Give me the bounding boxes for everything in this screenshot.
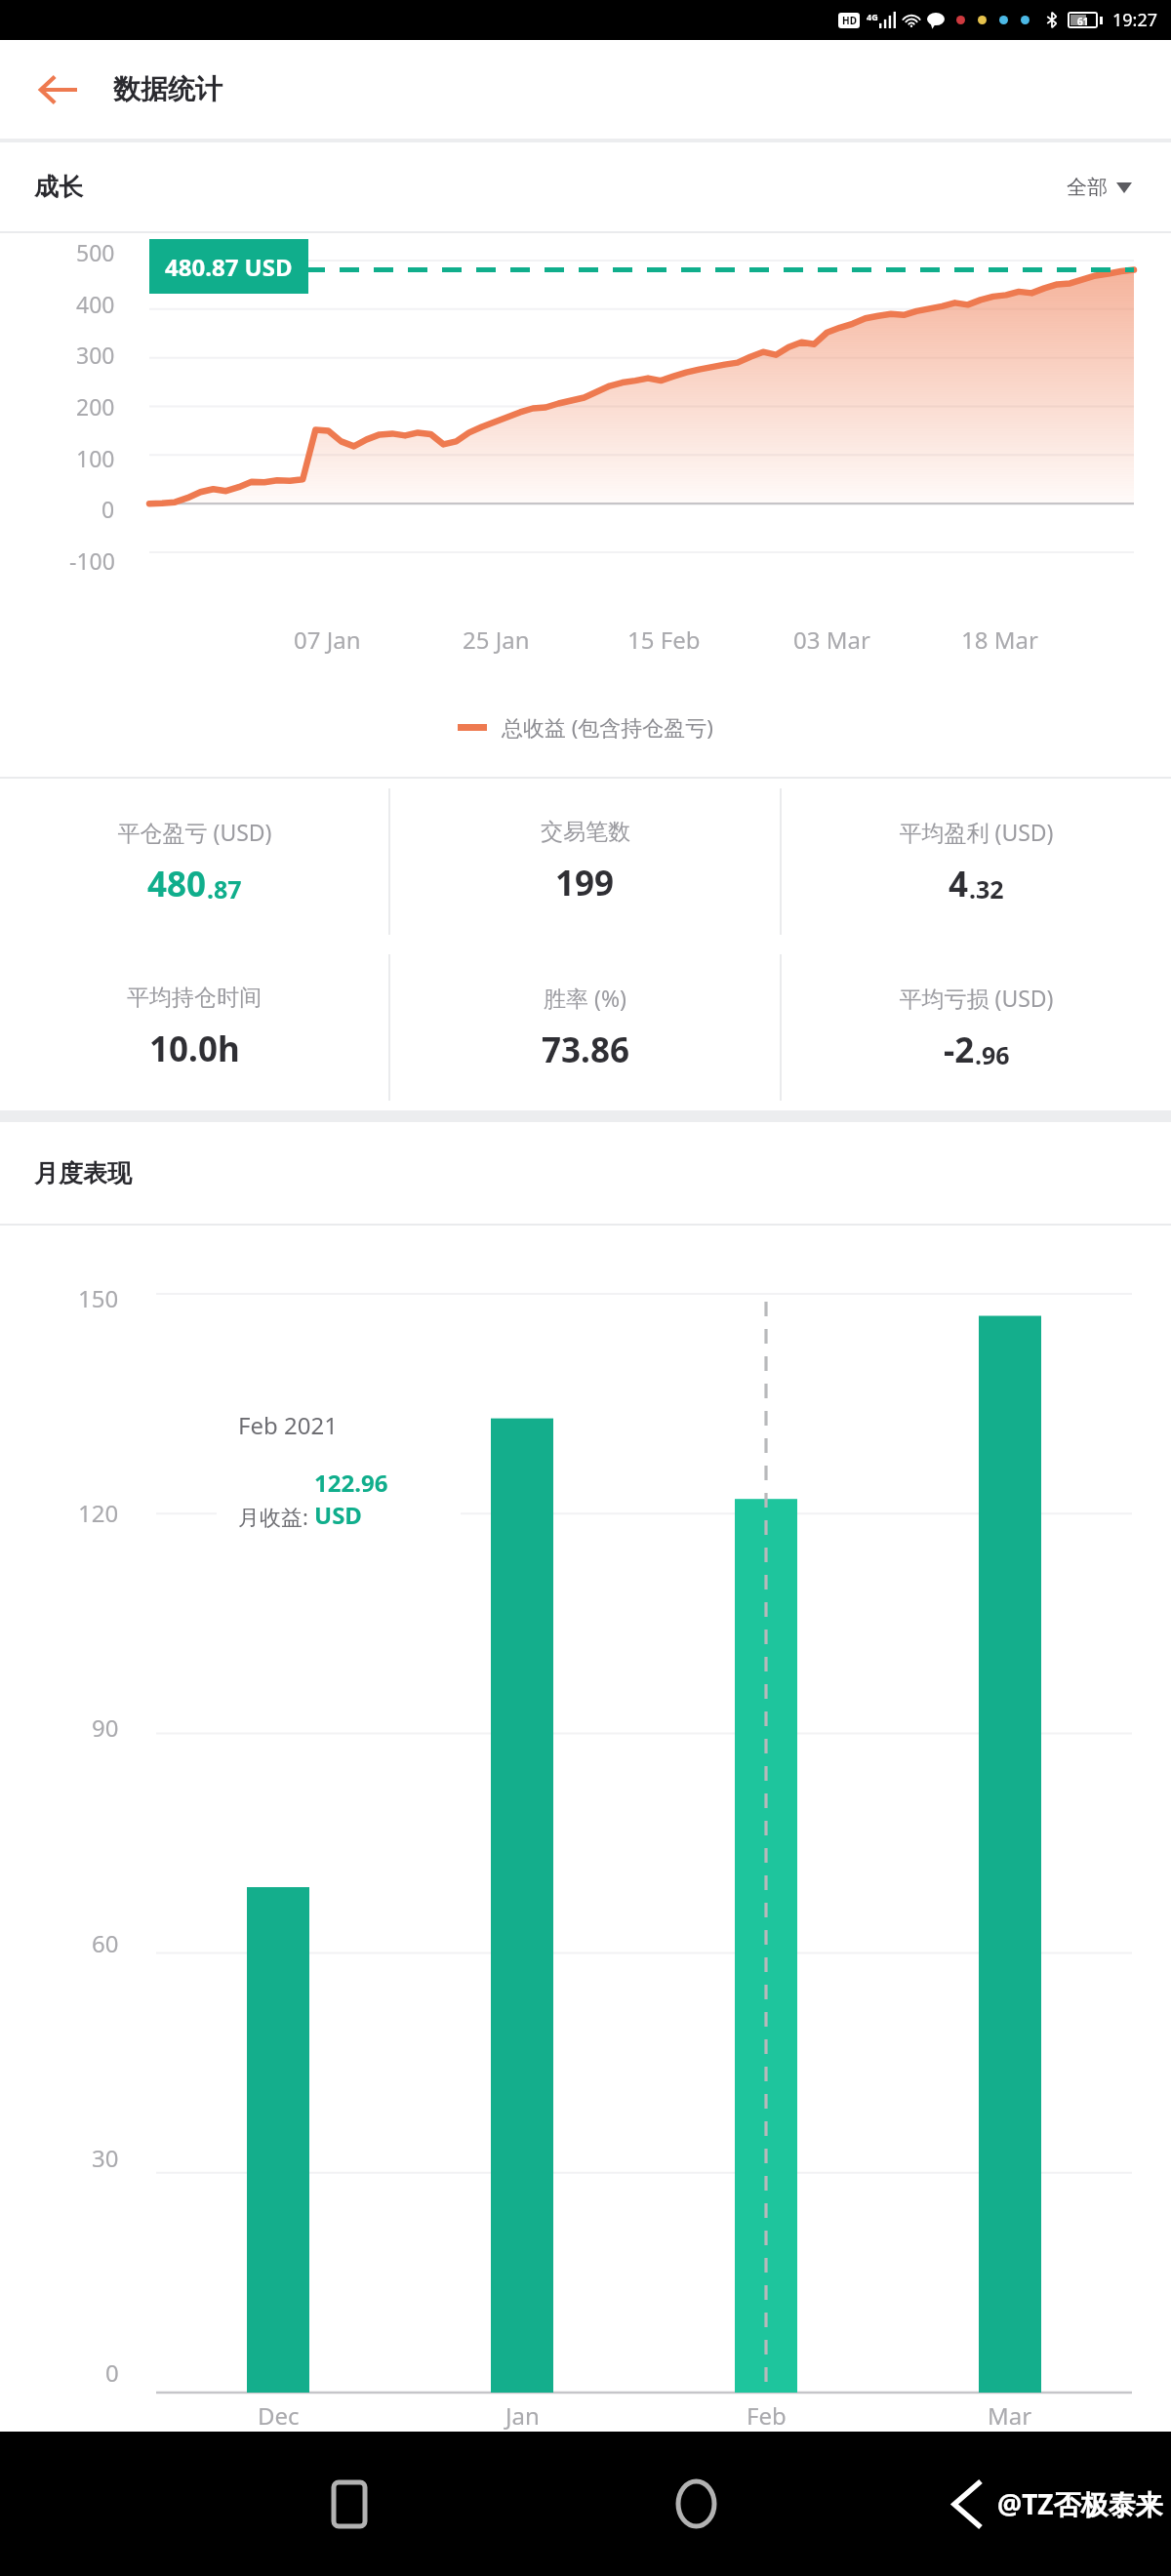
button[interactable]: Recent apps <box>312 2467 386 2541</box>
button[interactable]: Back <box>937 2474 997 2534</box>
button[interactable]: Feb 2021 <box>238 1352 439 1586</box>
staticText: 平均持仓时间 <box>127 984 262 1012</box>
staticText: 25 Jan <box>463 624 530 656</box>
staticText: Mar <box>988 2399 1032 2432</box>
staticText: 平均盈利 (USD) <box>899 817 1054 847</box>
button[interactable]: 平均亏损 (USD) <box>782 945 1171 1110</box>
staticText: 07 Jan <box>294 624 361 656</box>
staticText: 月收益: <box>238 1502 314 1531</box>
staticText: Feb 2021 <box>238 1409 338 1441</box>
staticText: 10.0h <box>149 1026 240 1072</box>
staticText: 18 Mar <box>961 624 1038 656</box>
staticText: HD <box>842 14 857 27</box>
staticText: 0 <box>101 494 115 524</box>
staticText: 90 <box>92 1711 119 1744</box>
button[interactable]: 平均盈利 (USD) <box>782 779 1171 945</box>
staticText: 03 Mar <box>793 624 870 656</box>
staticText: 15 Feb <box>627 624 701 656</box>
staticText: Feb <box>747 2399 787 2432</box>
button[interactable]: 平均持仓时间 <box>0 945 388 1110</box>
staticText: -2 <box>944 1026 975 1073</box>
staticText: 200 <box>76 391 115 422</box>
staticText: 300 <box>76 340 115 370</box>
staticText: Dec <box>258 2399 300 2432</box>
staticText: 150 <box>78 1282 119 1314</box>
staticText: 60 <box>92 1927 119 1959</box>
staticText: 成长 <box>34 172 83 202</box>
staticText: 胜率 (%) <box>544 983 626 1013</box>
button[interactable]: 平仓盈亏 (USD) <box>0 779 388 945</box>
staticText: 月度表现 <box>34 1158 132 1188</box>
button[interactable]: Home <box>659 2467 733 2541</box>
staticText: 4 <box>949 861 969 907</box>
staticText: .87 <box>207 872 242 906</box>
staticText: 120 <box>78 1497 119 1529</box>
staticText: 总收益 (包含持仓盈亏) <box>502 712 713 742</box>
staticText: Jan <box>505 2399 540 2432</box>
button[interactable]: Back <box>31 62 86 117</box>
staticText: -100 <box>69 545 115 576</box>
staticText: 19:27 <box>1112 8 1158 32</box>
staticText: 199 <box>555 860 615 906</box>
button[interactable]: 胜率 (%) <box>390 945 780 1110</box>
staticText: 数据统计 <box>113 72 222 106</box>
staticText: .32 <box>969 872 1004 906</box>
staticText: .96 <box>975 1038 1010 1071</box>
staticText: 4G <box>867 11 878 22</box>
staticText: 100 <box>76 443 115 473</box>
staticText: 30 <box>92 2142 119 2174</box>
staticText: 122.96 USD <box>314 1467 439 1531</box>
staticText: 0 <box>105 2356 119 2389</box>
staticText: 平仓盈亏 (USD) <box>117 817 272 847</box>
staticText: 73.86 <box>542 1026 629 1073</box>
staticText: @TZ否极泰来 <box>997 2485 1163 2522</box>
staticText: 480.87 USD <box>165 251 293 283</box>
button[interactable]: 交易笔数 <box>390 779 780 945</box>
staticText: 61 <box>1077 15 1089 25</box>
staticText: 480 <box>147 861 207 907</box>
staticText: 400 <box>76 289 115 319</box>
staticText: 交易笔数 <box>541 818 630 846</box>
button[interactable]: 全部 <box>1062 170 1137 205</box>
staticText: 平均亏损 (USD) <box>899 983 1054 1013</box>
staticText: 500 <box>76 237 115 267</box>
staticText: 全部 <box>1067 175 1108 200</box>
